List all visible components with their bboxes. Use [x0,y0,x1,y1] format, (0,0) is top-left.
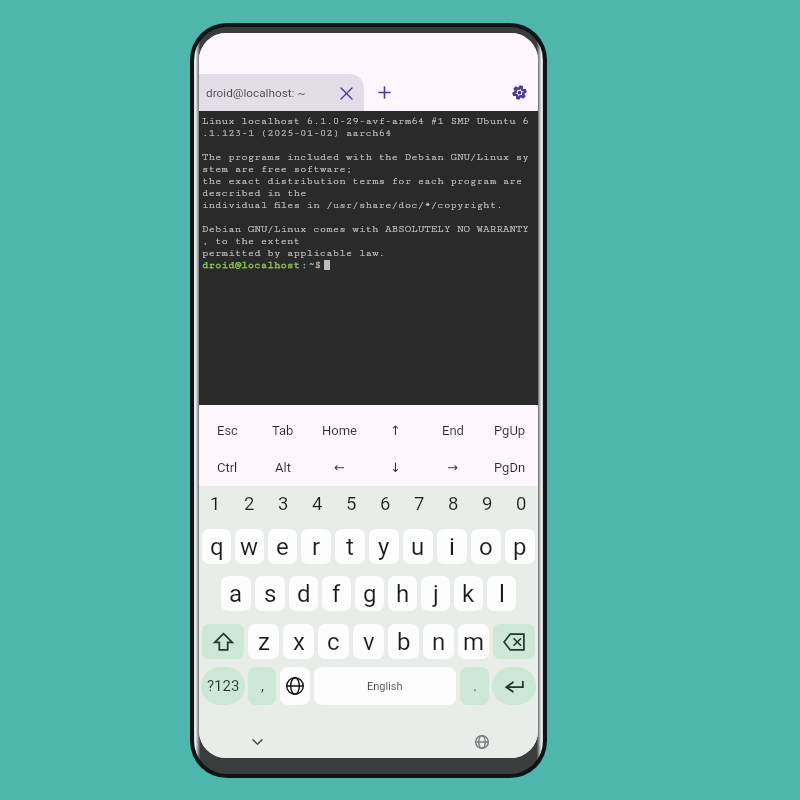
button[interactable]: Home [311,412,367,449]
staticText: Ctrl [217,460,238,475]
button[interactable]: a [221,576,251,611]
button[interactable]: g [355,576,384,611]
button[interactable]: z [248,624,279,659]
staticText: l [499,580,505,608]
button[interactable]: h [388,576,417,611]
staticText: ↓ [390,460,401,475]
button[interactable]: d [289,576,318,611]
button[interactable]: 7 [402,486,436,522]
button[interactable]: Esc [199,412,255,449]
button[interactable]: r [301,529,331,564]
button[interactable]: b [388,624,419,659]
button[interactable]: Ctrl [199,449,255,486]
button[interactable]: c [318,624,349,659]
staticText: ↑ [390,423,401,438]
button[interactable]: ← [311,449,367,486]
button[interactable]: Shift [202,624,244,659]
button[interactable]: ?123 [201,667,245,705]
button[interactable]: End [424,412,481,449]
staticText: b [397,628,411,656]
button[interactable]: Close tab [335,82,357,104]
button[interactable]: PgUp [481,412,538,449]
staticText: ?123 [207,677,240,695]
button[interactable]: Backspace [493,624,535,659]
button[interactable]: Switch language [467,731,497,753]
button[interactable]: Settings [501,74,538,111]
button[interactable]: → [424,449,481,486]
button[interactable]: English [314,667,456,705]
button[interactable]: y [369,529,399,564]
button[interactable]: i [437,529,467,564]
staticText: End [442,423,464,438]
staticText: .1.123-1 (2025-01-02) aarch64 [202,127,392,139]
staticText: 0 [516,493,527,515]
button[interactable]: l [487,576,516,611]
button[interactable]: j [421,576,450,611]
staticText: ~$ [308,259,322,271]
button[interactable]: w [235,529,264,564]
staticText: described in the [202,187,307,199]
button[interactable]: 9 [470,486,504,522]
staticText: e [276,533,289,561]
button[interactable]: Change language [280,667,310,705]
button[interactable]: Tab [255,412,311,449]
button[interactable]: n [423,624,454,659]
button[interactable]: Enter [492,667,536,705]
staticText: w [240,533,259,561]
staticText: → [447,460,458,475]
button[interactable]: . [460,667,489,705]
staticText: t [346,533,354,561]
button[interactable]: u [403,529,433,564]
button[interactable]: , [248,667,276,705]
staticText: . [473,677,477,695]
staticText: j [433,580,439,608]
button[interactable]: 0 [504,486,538,522]
button[interactable]: t [335,529,365,564]
staticText: the exact distribution terms for each pr… [202,175,523,187]
button[interactable]: 6 [368,486,402,522]
button[interactable]: f [322,576,351,611]
button[interactable]: Alt [255,449,311,486]
staticText: individual files in /usr/share/doc/*/cop… [202,199,503,211]
button[interactable]: New tab [364,74,405,111]
button[interactable]: ↓ [367,449,424,486]
button[interactable]: q [202,529,231,564]
staticText: n [432,628,446,656]
button[interactable]: ↑ [367,412,424,449]
button[interactable]: v [353,624,384,659]
staticText: PgUp [494,423,526,438]
button[interactable]: PgDn [481,449,538,486]
staticText: a [229,580,243,608]
button[interactable]: p [505,529,535,564]
button[interactable]: droid@localhost: ~ [199,74,364,111]
staticText: Alt [275,460,291,475]
button[interactable]: k [454,576,483,611]
button[interactable]: 8 [436,486,470,522]
button[interactable]: e [268,529,297,564]
button[interactable]: 5 [334,486,368,522]
button[interactable]: 4 [300,486,334,522]
staticText: q [210,533,224,561]
button[interactable]: m [458,624,489,659]
button[interactable]: 1 [199,486,232,522]
button[interactable]: Hide keyboard [242,731,272,753]
staticText: Linux localhost 6.1.0-29-avf-arm64 #1 SM… [202,115,529,127]
staticText: 3 [278,493,289,515]
button[interactable]: s [255,576,285,611]
button[interactable]: 2 [232,486,266,522]
button[interactable]: 3 [266,486,300,522]
button[interactable]: x [283,624,314,659]
staticText: g [363,580,377,608]
staticText: ← [334,460,345,475]
staticText: o [479,533,493,561]
staticText: PgDn [494,460,526,475]
staticText: , to the extent [202,235,301,247]
staticText: f [332,580,341,608]
button[interactable]: o [471,529,501,564]
staticText: 7 [414,493,425,515]
staticText: permitted by applicable law. [202,247,386,259]
staticText: m [463,628,485,656]
staticText: : [301,259,308,271]
staticText: i [449,533,455,561]
staticText: s [264,580,277,608]
